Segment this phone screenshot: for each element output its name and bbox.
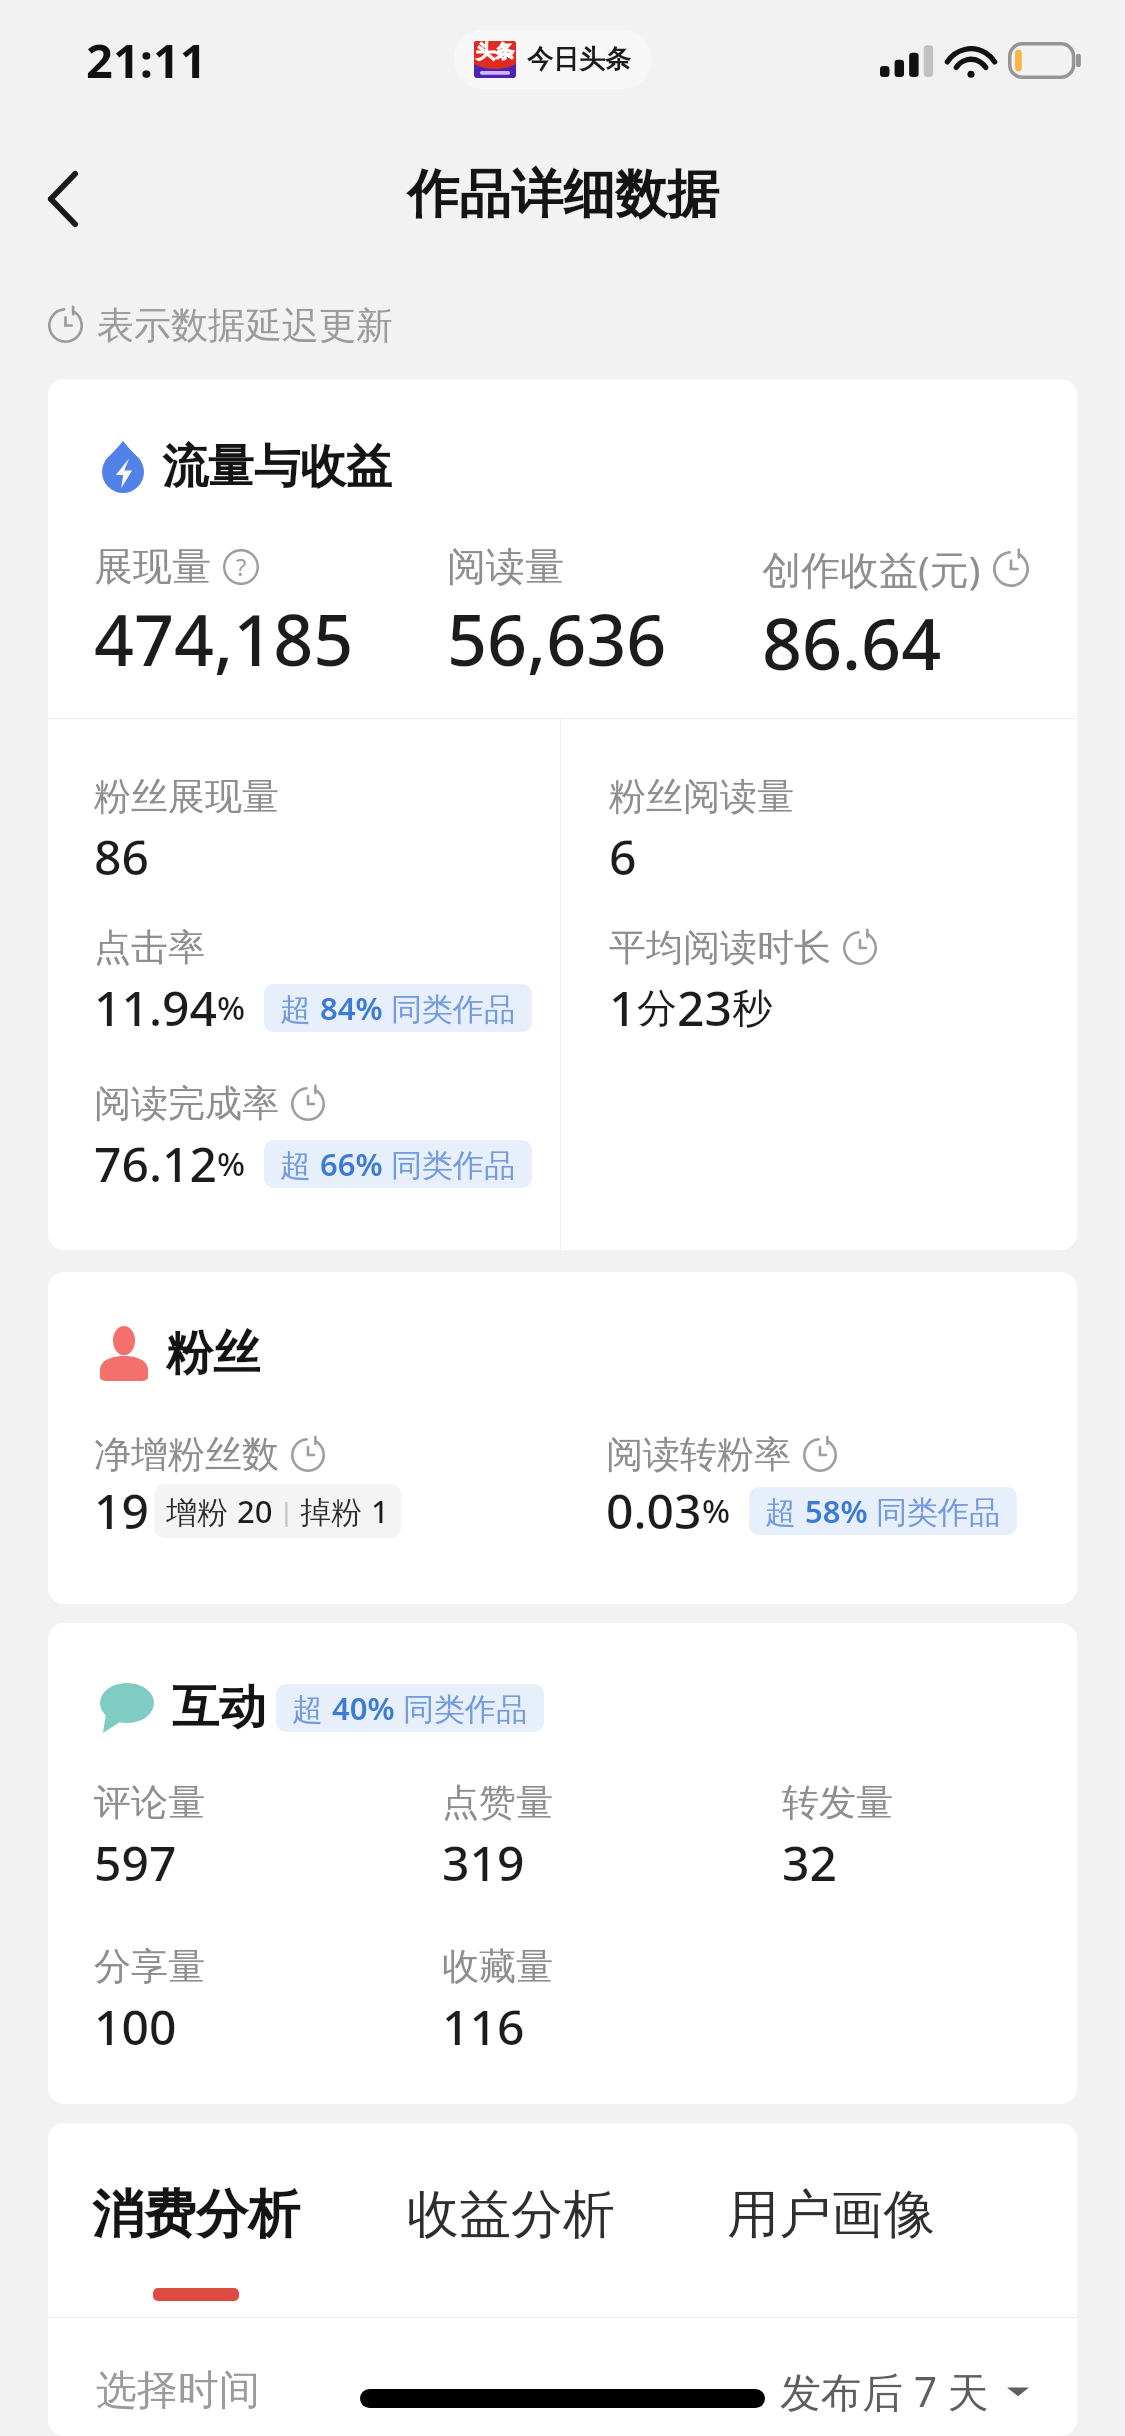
- staticText: %: [702, 1488, 731, 1533]
- staticText: 掉粉: [300, 1490, 371, 1532]
- staticText: 116: [442, 1994, 525, 2059]
- button[interactable]: 互动: [100, 1678, 544, 1737]
- staticText: 表示数据延迟更新: [97, 302, 393, 349]
- button[interactable]: 收益分析: [407, 2166, 615, 2264]
- staticText: 超: [765, 1490, 805, 1532]
- button[interactable]: 发布后 7 天: [780, 2349, 1029, 2433]
- staticText: 秒: [732, 983, 772, 1033]
- staticText: 597: [94, 1830, 177, 1895]
- staticText: 消费分析: [92, 2182, 300, 2248]
- staticText: 阅读量: [447, 542, 564, 591]
- staticText: 转发量: [782, 1779, 893, 1826]
- staticText: 点赞量: [442, 1779, 553, 1826]
- staticText: 头条: [476, 41, 514, 64]
- staticText: 净增粉丝数: [94, 1431, 279, 1478]
- staticText: 平均阅读时长: [609, 924, 831, 971]
- staticText: 发布后 7 天: [780, 2363, 989, 2419]
- staticText: 用户画像: [727, 2182, 935, 2248]
- staticText: 58%: [805, 1490, 868, 1532]
- staticText: 1: [609, 975, 637, 1040]
- staticText: 收藏量: [442, 1943, 553, 1990]
- button[interactable]: 流量与收益: [102, 438, 392, 496]
- staticText: ?: [236, 551, 247, 583]
- staticText: 100: [94, 1994, 177, 2059]
- button[interactable]: 用户画像: [727, 2166, 935, 2264]
- staticText: 86: [94, 824, 149, 889]
- staticText: 474,185: [94, 591, 354, 686]
- button[interactable]: Back: [17, 153, 109, 245]
- staticText: 1: [371, 1490, 389, 1532]
- staticText: 20: [237, 1490, 273, 1532]
- staticText: |: [273, 1494, 300, 1528]
- staticText: 6: [609, 824, 637, 889]
- staticText: %: [217, 985, 246, 1030]
- staticText: 66%: [320, 1143, 383, 1185]
- staticText: 阅读转粉率: [606, 1431, 791, 1478]
- staticText: 同类作品: [868, 1490, 1001, 1532]
- staticText: 同类作品: [383, 987, 516, 1029]
- staticText: %: [217, 1141, 246, 1186]
- staticText: 0.03: [606, 1478, 702, 1543]
- staticText: 作品详细数据: [407, 162, 719, 228]
- button[interactable]: 粉丝: [100, 1324, 260, 1383]
- staticText: 分享量: [94, 1943, 205, 1990]
- staticText: 超: [292, 1687, 332, 1729]
- staticText: 粉丝: [166, 1324, 260, 1383]
- staticText: 粉丝展现量: [94, 773, 279, 820]
- staticText: 今日头条: [527, 43, 631, 76]
- staticText: 超: [280, 987, 320, 1029]
- button[interactable]: 消费分析: [92, 2166, 300, 2317]
- staticText: 19: [94, 1478, 149, 1543]
- staticText: 流量与收益: [162, 438, 392, 496]
- staticText: 84%: [320, 987, 383, 1029]
- staticText: 同类作品: [383, 1143, 516, 1185]
- staticText: 同类作品: [395, 1687, 528, 1729]
- staticText: 展现量: [94, 542, 211, 591]
- staticText: 评论量: [94, 1779, 205, 1826]
- staticText: 319: [442, 1830, 525, 1895]
- staticText: 创作收益(元): [762, 542, 981, 595]
- staticText: 23: [677, 975, 732, 1040]
- staticText: 收益分析: [407, 2182, 615, 2248]
- staticText: 21:11: [86, 28, 207, 92]
- staticText: 40%: [332, 1687, 395, 1729]
- staticText: 76.12: [94, 1131, 217, 1196]
- staticText: 增粉: [166, 1490, 237, 1532]
- staticText: 粉丝阅读量: [609, 773, 794, 820]
- staticText: 11.94: [94, 975, 217, 1040]
- staticText: 86.64: [762, 595, 942, 690]
- staticText: 点击率: [94, 924, 205, 971]
- staticText: 互动: [172, 1678, 266, 1737]
- staticText: 超: [280, 1143, 320, 1185]
- staticText: 分: [637, 983, 677, 1033]
- staticText: 阅读完成率: [94, 1080, 279, 1127]
- staticText: 32: [782, 1830, 837, 1895]
- staticText: 56,636: [447, 591, 667, 686]
- staticText: 选择时间: [96, 2365, 260, 2417]
